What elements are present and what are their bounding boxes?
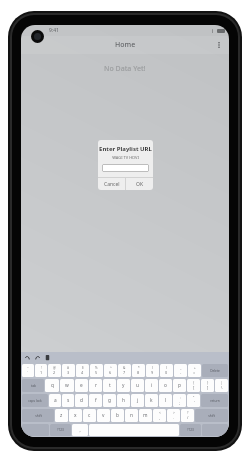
staticText: > bbox=[173, 411, 175, 415]
staticText: / bbox=[187, 415, 189, 420]
button[interactable] bbox=[202, 424, 228, 436]
button[interactable]: : bbox=[173, 394, 186, 407]
button[interactable]: Redo bbox=[34, 354, 41, 361]
button[interactable]: tab bbox=[22, 379, 44, 392]
staticText: Cancel bbox=[104, 181, 120, 188]
staticText: w bbox=[65, 382, 69, 389]
staticText: - bbox=[180, 370, 182, 375]
staticText: b bbox=[116, 412, 119, 419]
button[interactable]: f bbox=[89, 394, 102, 407]
button[interactable]: * bbox=[132, 364, 145, 377]
button[interactable]: ?123 bbox=[50, 424, 71, 436]
button[interactable]: OK bbox=[126, 178, 153, 190]
button[interactable]: k bbox=[145, 394, 158, 407]
button[interactable] bbox=[102, 164, 149, 172]
button[interactable]: ^ bbox=[104, 364, 117, 377]
button[interactable] bbox=[22, 424, 49, 436]
staticText: * bbox=[138, 366, 140, 370]
button[interactable]: More options bbox=[212, 38, 226, 52]
staticText: , bbox=[159, 415, 161, 420]
button[interactable]: " bbox=[187, 394, 200, 407]
staticText: $ bbox=[82, 366, 84, 370]
staticText: u bbox=[136, 382, 139, 389]
button[interactable]: # bbox=[62, 364, 75, 377]
button[interactable]: ) bbox=[160, 364, 173, 377]
button[interactable]: q bbox=[45, 379, 59, 392]
button[interactable]: Delete bbox=[202, 364, 228, 377]
button[interactable]: m bbox=[139, 409, 152, 422]
button[interactable]: r bbox=[89, 379, 102, 392]
staticText: ' bbox=[194, 400, 195, 405]
staticText: y bbox=[122, 382, 125, 389]
button[interactable]: shift bbox=[22, 409, 54, 422]
button[interactable]: l bbox=[159, 394, 172, 407]
button[interactable]: } bbox=[201, 379, 214, 392]
button[interactable]: y bbox=[117, 379, 130, 392]
staticText: ) bbox=[166, 366, 167, 370]
staticText: x bbox=[74, 412, 77, 419]
button[interactable]: shift bbox=[195, 409, 228, 422]
button[interactable]: u bbox=[131, 379, 144, 392]
staticText: 6 bbox=[109, 370, 112, 375]
staticText: z bbox=[60, 412, 63, 419]
button[interactable]: + bbox=[188, 364, 201, 377]
button[interactable]: v bbox=[97, 409, 110, 422]
staticText: n bbox=[130, 412, 133, 419]
button[interactable]: > bbox=[167, 409, 180, 422]
button[interactable]: g bbox=[103, 394, 116, 407]
staticText: | bbox=[221, 381, 223, 385]
button[interactable]: n bbox=[125, 409, 138, 422]
staticText: = bbox=[193, 370, 196, 375]
button[interactable]: , bbox=[72, 424, 88, 436]
staticText: { bbox=[193, 381, 195, 385]
button[interactable]: a bbox=[49, 394, 61, 407]
staticText: # bbox=[67, 366, 70, 370]
button[interactable]: z bbox=[55, 409, 68, 422]
button[interactable]: i bbox=[145, 379, 158, 392]
staticText: f bbox=[95, 397, 97, 404]
staticText: & bbox=[123, 366, 126, 370]
staticText: WAGI TV HDVI bbox=[98, 155, 153, 160]
button[interactable]: ~ bbox=[22, 364, 34, 377]
button[interactable]: e bbox=[75, 379, 88, 392]
staticText: , bbox=[79, 427, 81, 433]
staticText: 9 bbox=[151, 370, 154, 375]
staticText: ` bbox=[27, 370, 29, 375]
staticText: ! bbox=[41, 366, 42, 370]
button[interactable]: ? bbox=[181, 409, 194, 422]
staticText: i bbox=[151, 382, 153, 389]
staticText: Enter Playlist URL bbox=[98, 145, 153, 153]
button[interactable]: ( bbox=[146, 364, 159, 377]
button[interactable]: { bbox=[187, 379, 200, 392]
button[interactable]: ?123 bbox=[180, 424, 201, 436]
staticText: ( bbox=[152, 366, 153, 370]
button[interactable]: | bbox=[215, 379, 228, 392]
button[interactable]: t bbox=[103, 379, 116, 392]
button[interactable]: d bbox=[75, 394, 88, 407]
button[interactable]: caps lock bbox=[22, 394, 48, 407]
button[interactable]: ! bbox=[35, 364, 47, 377]
staticText: Delete bbox=[210, 369, 220, 373]
button[interactable]: x bbox=[69, 409, 82, 422]
staticText: 8 bbox=[137, 370, 140, 375]
button[interactable]: o bbox=[159, 379, 172, 392]
button[interactable]: @ bbox=[48, 364, 61, 377]
button[interactable]: return bbox=[201, 394, 228, 407]
button[interactable]: p bbox=[173, 379, 186, 392]
button[interactable]: < bbox=[153, 409, 166, 422]
button[interactable]: Undo bbox=[24, 354, 31, 361]
button[interactable]: b bbox=[111, 409, 124, 422]
button[interactable]: s bbox=[62, 394, 74, 407]
button[interactable]: c bbox=[83, 409, 96, 422]
button[interactable]: % bbox=[90, 364, 103, 377]
button[interactable]: h bbox=[117, 394, 130, 407]
button[interactable]: & bbox=[118, 364, 131, 377]
button[interactable]: w bbox=[60, 379, 74, 392]
button[interactable]: Clipboard bbox=[44, 354, 51, 361]
button[interactable]: Cancel bbox=[98, 178, 125, 190]
button[interactable]: $ bbox=[76, 364, 89, 377]
button[interactable]: _ bbox=[174, 364, 187, 377]
staticText: p bbox=[178, 382, 181, 389]
button[interactable]: j bbox=[131, 394, 144, 407]
